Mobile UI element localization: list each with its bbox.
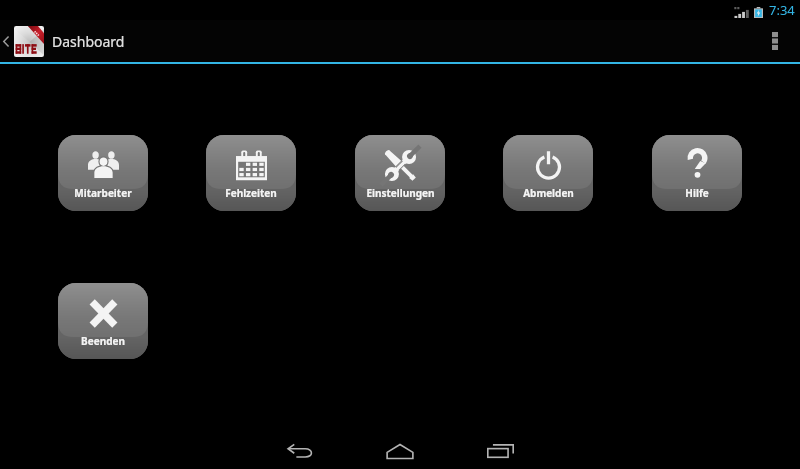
staticText: Mitarbeiter <box>74 186 132 200</box>
staticText: 7:34 <box>769 1 795 19</box>
button[interactable]: Beenden <box>58 283 148 359</box>
staticText: Beenden <box>81 334 125 348</box>
button[interactable]: More options <box>750 20 800 62</box>
staticText: Fehlzeiten <box>225 186 277 200</box>
button[interactable]: Fehlzeiten <box>206 135 296 211</box>
button[interactable]: Home <box>350 429 450 469</box>
staticText: Dashboard <box>52 32 125 51</box>
button[interactable]: Mitarbeiter <box>58 135 148 211</box>
staticText: Hilfe <box>685 186 709 200</box>
button[interactable]: Recent apps <box>450 429 550 469</box>
other: Up <box>2 34 10 49</box>
button[interactable]: Up <box>0 26 125 57</box>
staticText: Abmelden <box>523 186 574 200</box>
button[interactable]: Einstellungen <box>355 135 445 211</box>
staticText: Einstellungen <box>366 186 435 200</box>
button[interactable]: Back <box>250 429 350 469</box>
button[interactable]: Hilfe <box>652 135 742 211</box>
button[interactable]: Abmelden <box>503 135 593 211</box>
